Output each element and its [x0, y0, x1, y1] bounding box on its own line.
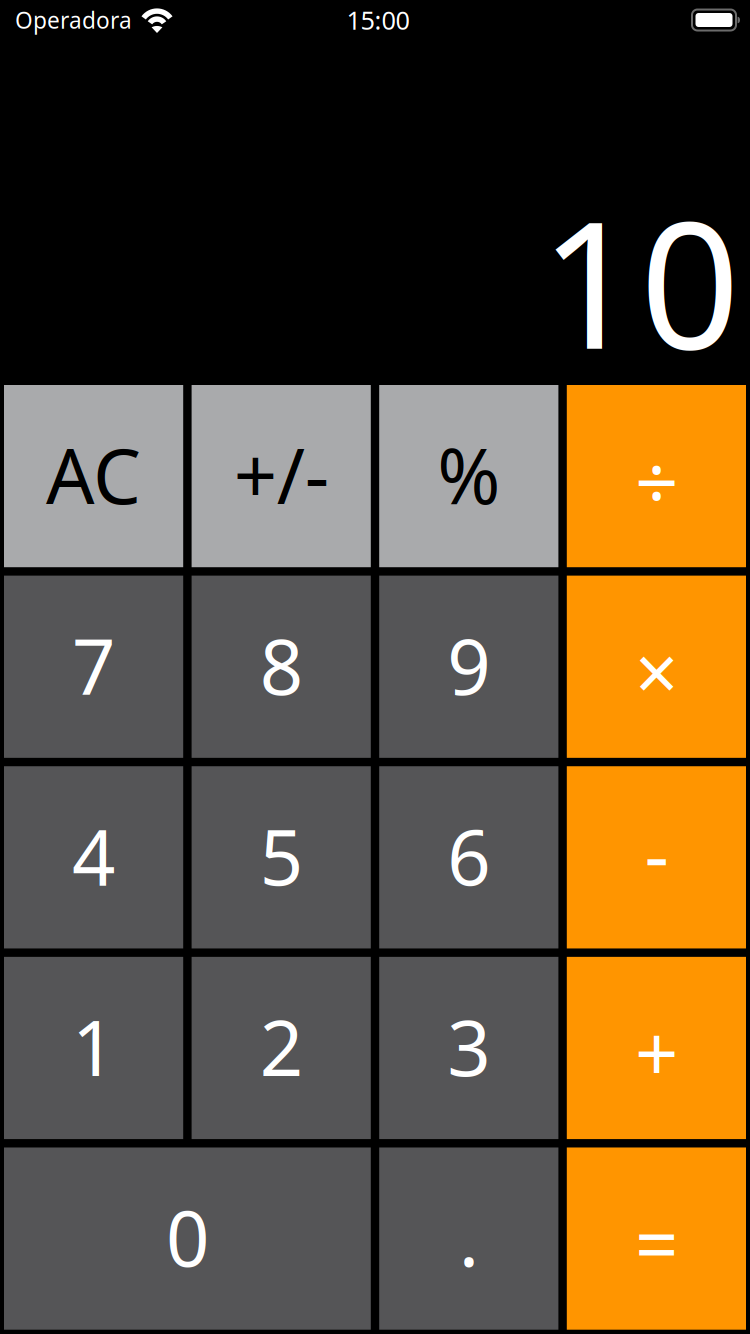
- staticText: 0: [166, 1187, 209, 1287]
- button[interactable]: 0: [4, 1147, 371, 1330]
- button[interactable]: Plus: [567, 957, 746, 1139]
- button[interactable]: 7: [4, 576, 183, 758]
- button[interactable]: 1: [4, 957, 183, 1139]
- button[interactable]: Plus minus: [192, 385, 371, 567]
- button[interactable]: 2: [192, 957, 371, 1139]
- staticText: ×: [635, 621, 678, 722]
- button[interactable]: Decimal point: [379, 1147, 558, 1330]
- button[interactable]: All clear: [4, 385, 183, 567]
- staticText: 1: [72, 996, 115, 1097]
- staticText: 7: [72, 615, 115, 716]
- staticText: 8: [260, 615, 303, 716]
- button[interactable]: 3: [379, 957, 558, 1139]
- button[interactable]: 6: [379, 766, 558, 948]
- button[interactable]: Minus: [567, 766, 746, 948]
- button[interactable]: Multiply: [567, 576, 746, 758]
- staticText: %: [437, 424, 500, 525]
- staticText: 6: [447, 805, 490, 906]
- button[interactable]: Equals: [567, 1147, 746, 1330]
- staticText: AC: [46, 424, 141, 525]
- staticText: 9: [447, 615, 490, 716]
- staticText: Operadora: [15, 5, 132, 35]
- staticText: 5: [260, 805, 303, 906]
- staticText: ÷: [635, 430, 678, 531]
- staticText: =: [635, 1193, 678, 1293]
- button[interactable]: 5: [192, 766, 371, 948]
- staticText: +/-: [234, 424, 329, 525]
- staticText: .: [459, 1187, 479, 1287]
- staticText: 2: [260, 996, 303, 1097]
- staticText: 4: [72, 805, 115, 906]
- button[interactable]: 8: [192, 576, 371, 758]
- staticText: -: [644, 803, 668, 904]
- button[interactable]: Percent: [379, 385, 558, 567]
- button[interactable]: 4: [4, 766, 183, 948]
- staticText: 3: [447, 996, 490, 1097]
- button[interactable]: Divide: [567, 385, 746, 567]
- staticText: 10: [540, 165, 740, 397]
- staticText: +: [635, 1002, 678, 1103]
- button[interactable]: 9: [379, 576, 558, 758]
- staticText: 15:00: [346, 3, 409, 37]
